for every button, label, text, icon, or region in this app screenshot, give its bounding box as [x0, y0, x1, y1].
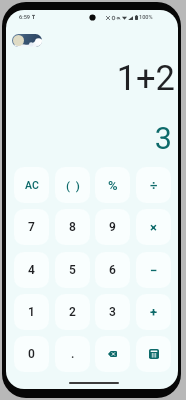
staticText: − [150, 263, 158, 278]
staticText: ÷ [150, 178, 158, 193]
staticText: 100% [139, 14, 153, 21]
staticText: 0 [28, 347, 35, 361]
button[interactable]: ÷ [136, 167, 171, 203]
staticText: + [150, 305, 158, 320]
button[interactable]: Toggle dark mode [12, 34, 42, 47]
staticText: 8 [69, 220, 76, 234]
button[interactable]: AC [14, 167, 49, 203]
button[interactable]: 2 [55, 294, 90, 330]
staticText: AC [25, 179, 39, 191]
staticText: . [71, 347, 75, 361]
button[interactable]: 4 [14, 252, 49, 288]
staticText: 1+2 [6, 58, 175, 98]
staticText: 6 [109, 263, 116, 277]
staticText: 7 [28, 220, 35, 234]
button[interactable]: 5 [55, 252, 90, 288]
staticText: % [108, 178, 118, 193]
button[interactable]: 6 [95, 252, 130, 288]
staticText: 1 [28, 305, 35, 319]
button[interactable]: % [95, 167, 130, 203]
button[interactable]: − [136, 252, 171, 288]
staticText: 5 [69, 263, 76, 277]
button[interactable]: Backspace [95, 336, 130, 372]
button[interactable]: 0 [14, 336, 49, 372]
button[interactable]: × [136, 209, 171, 245]
staticText: 4 [28, 263, 35, 277]
button[interactable]: . [55, 336, 90, 372]
button[interactable]: + [136, 294, 171, 330]
button[interactable]: 3 [95, 294, 130, 330]
staticText: 3 [109, 305, 116, 319]
staticText: 2 [69, 305, 76, 319]
button[interactable]: 8 [55, 209, 90, 245]
button[interactable]: History [136, 336, 171, 372]
staticText: ( ) [66, 179, 80, 192]
button[interactable]: ( ) [55, 167, 90, 203]
button[interactable]: 7 [14, 209, 49, 245]
button[interactable]: 1 [14, 294, 49, 330]
button[interactable]: 9 [95, 209, 130, 245]
staticText: × [150, 220, 157, 235]
staticText: 6:59 [19, 14, 31, 21]
staticText: 3 [6, 121, 172, 157]
staticText: 9 [109, 220, 116, 234]
